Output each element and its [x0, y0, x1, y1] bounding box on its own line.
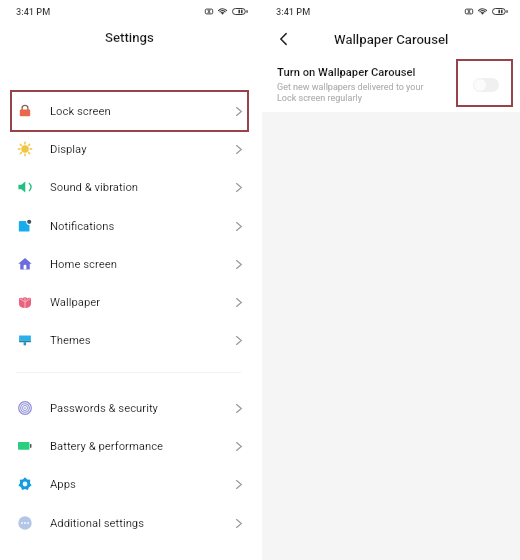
button[interactable]: Turn on Wallpaper Carousel: [262, 60, 520, 108]
staticText: Settings: [105, 30, 154, 45]
staticText: Display: [50, 143, 87, 156]
button[interactable]: Back: [272, 28, 294, 50]
staticText: Notifications: [50, 220, 115, 233]
button[interactable]: Home screen: [0, 245, 262, 283]
button[interactable]: Passwords & security: [0, 389, 262, 427]
staticText: Battery & performance: [50, 440, 164, 453]
staticText: Passwords & security: [50, 402, 158, 415]
staticText: Additional settings: [50, 517, 145, 530]
staticText: Sound & vibration: [50, 181, 139, 194]
staticText: Themes: [50, 334, 91, 347]
staticText: Lock screen: [50, 105, 111, 118]
button[interactable]: Toggle Wallpaper Carousel: [473, 78, 499, 92]
staticText: Wallpaper Carousel: [334, 32, 449, 47]
button[interactable]: Display: [0, 130, 262, 168]
button[interactable]: Notifications: [0, 207, 262, 245]
staticText: Wallpaper: [50, 296, 101, 309]
button[interactable]: Themes: [0, 321, 262, 359]
staticText: Turn on Wallpaper Carousel: [277, 66, 416, 79]
staticText: 3:41 PM: [276, 6, 311, 17]
staticText: Home screen: [50, 258, 117, 271]
button[interactable]: Battery & performance: [0, 427, 262, 465]
button[interactable]: Additional settings: [0, 504, 262, 542]
button[interactable]: Lock screen: [0, 92, 262, 130]
button[interactable]: Wallpaper: [0, 283, 262, 321]
staticText: Get new wallpapers delivered to your Loc…: [277, 82, 424, 104]
button[interactable]: Apps: [0, 465, 262, 503]
staticText: Apps: [50, 478, 76, 491]
staticText: 3:41 PM: [16, 6, 51, 17]
button[interactable]: Sound & vibration: [0, 168, 262, 206]
